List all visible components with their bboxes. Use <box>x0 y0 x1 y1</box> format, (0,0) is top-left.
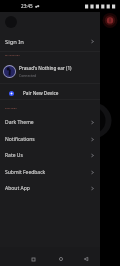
staticText: Prasad's Nothing ear (1) <box>19 65 72 71</box>
staticText: About App <box>5 185 30 192</box>
button[interactable]: Sign In <box>0 34 100 49</box>
staticText: Rate Us <box>5 152 23 159</box>
staticText: Dark Theme <box>5 119 34 126</box>
button[interactable]: Prasad's Nothing ear (1) <box>0 62 100 81</box>
button[interactable]: Back <box>76 252 96 266</box>
staticText: Sign In <box>5 38 24 46</box>
staticText: Notifications <box>5 136 35 143</box>
staticText: Connected <box>19 73 37 78</box>
button[interactable]: Submit Feedback <box>0 164 100 180</box>
staticText: Submit Feedback <box>5 169 46 176</box>
button[interactable]: Notifications <box>0 131 100 147</box>
button[interactable]: Pair New Device <box>0 86 100 100</box>
button[interactable]: Dark Theme <box>0 114 100 130</box>
staticText: 23:45 <box>21 3 33 9</box>
button[interactable]: Rate Us <box>0 147 100 163</box>
button[interactable]: About App <box>0 180 100 196</box>
staticText: SETTINGS <box>5 107 18 110</box>
staticText: MY DEVICES <box>5 54 20 57</box>
button[interactable]: Recents <box>23 252 43 266</box>
button[interactable]: Home <box>51 252 71 266</box>
staticText: Pair New Device <box>23 90 59 96</box>
